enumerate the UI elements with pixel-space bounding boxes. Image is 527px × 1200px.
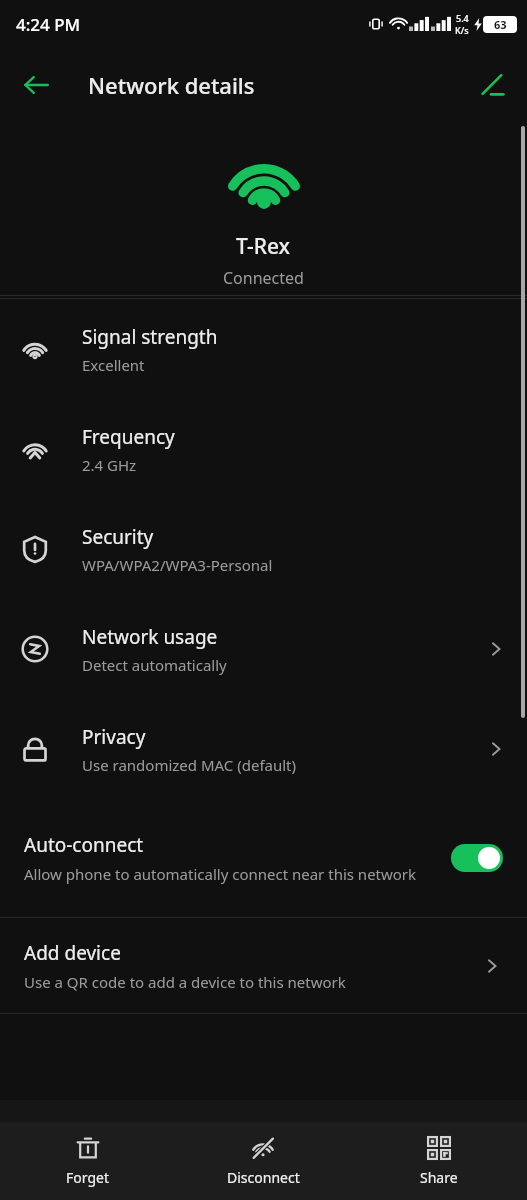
button[interactable]: Security [0, 499, 527, 599]
staticText: Allow phone to automatically connect nea… [24, 864, 417, 884]
button[interactable]: Disconnect [175, 1122, 351, 1200]
staticText: 4:24 PM [16, 13, 81, 36]
staticText: Excellent [82, 355, 145, 375]
button[interactable]: Signal strength [0, 299, 527, 399]
staticText: K/s [455, 24, 469, 36]
button[interactable]: Edit [469, 61, 517, 109]
staticText: Network usage [82, 624, 218, 650]
button[interactable]: Privacy [0, 699, 527, 799]
button[interactable]: Back [12, 61, 60, 109]
staticText: Detect automatically [82, 655, 227, 675]
staticText: 2.4 GHz [82, 455, 137, 475]
staticText: Privacy [82, 724, 146, 750]
staticText: Forget [66, 1168, 109, 1187]
staticText: WPA/WPA2/WPA3-Personal [82, 555, 273, 575]
staticText: Connected [223, 267, 304, 289]
staticText: Share [420, 1168, 458, 1187]
staticText: T-Rex [236, 232, 291, 261]
button[interactable]: Add device [0, 918, 527, 1013]
button[interactable]: Frequency [0, 399, 527, 499]
button[interactable]: Forget [0, 1122, 175, 1200]
button[interactable]: Network usage [0, 599, 527, 699]
staticText: Use a QR code to add a device to this ne… [24, 972, 346, 992]
staticText: Add device [24, 940, 121, 966]
staticText: Auto-connect [24, 832, 144, 858]
staticText: Disconnect [227, 1168, 300, 1187]
staticText: 5.4 [456, 12, 469, 24]
staticText: 63 [494, 17, 507, 32]
staticText: Network details [88, 70, 255, 100]
button[interactable]: Share [351, 1122, 527, 1200]
staticText: Use randomized MAC (default) [82, 755, 297, 775]
staticText: Signal strength [82, 324, 218, 350]
staticText: Security [82, 524, 154, 550]
staticText: Frequency [82, 424, 175, 450]
button[interactable]: Auto-connect [0, 799, 527, 917]
